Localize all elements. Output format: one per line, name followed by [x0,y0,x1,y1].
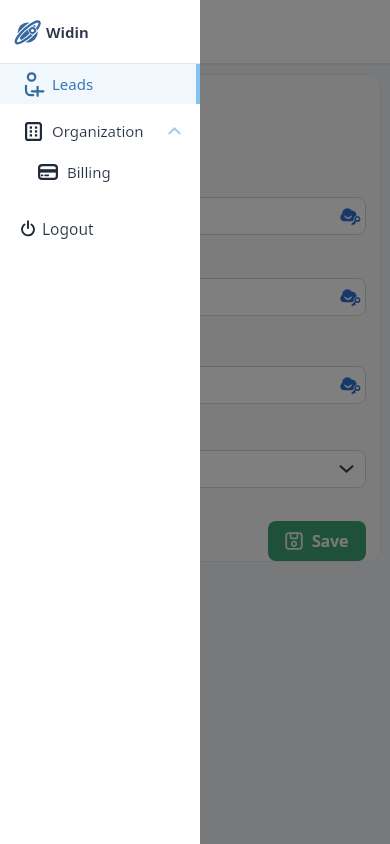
staticText: Save [312,530,349,552]
button[interactable] [24,197,366,235]
staticText: Logout [42,218,94,239]
button[interactable] [24,366,366,404]
button[interactable]: Organization [0,111,200,151]
button[interactable] [24,450,366,488]
button[interactable] [0,0,390,844]
staticText: Organization [52,121,144,141]
button[interactable] [24,278,366,316]
button[interactable]: Logout [0,208,200,248]
staticText: Billing [67,162,111,182]
staticText: Widin [46,22,89,42]
staticText: Leads [52,74,94,94]
button[interactable]: Save [268,521,366,561]
button[interactable]: Billing [0,151,200,192]
button[interactable]: Leads [0,64,200,104]
